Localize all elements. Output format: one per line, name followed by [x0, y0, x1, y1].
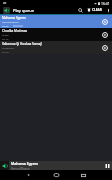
button[interactable]: Play: [98, 28, 112, 41]
button[interactable]: Mahoma Sypres: [0, 161, 112, 170]
staticText: Play queue: [13, 8, 35, 13]
button[interactable]: Search: [76, 6, 85, 14]
button[interactable]: More options: [104, 6, 112, 14]
staticText: 16:41: [101, 1, 110, 6]
button[interactable]: Play: [98, 15, 112, 28]
button[interactable]: Pause: [102, 161, 112, 170]
staticText: 02:15: [2, 37, 9, 40]
button[interactable]: Back: [23, 170, 35, 180]
staticText: Mahoma Sypres: [11, 161, 38, 166]
button[interactable]: Mahoma Sypres: [0, 15, 112, 28]
staticText: CLEAR: [92, 8, 102, 12]
staticText: Chudka Matimaz: [2, 29, 27, 33]
button[interactable]: Recent apps: [77, 170, 89, 180]
staticText: Verrus/Mason: [2, 20, 19, 23]
button[interactable]: Home: [50, 170, 62, 180]
staticText: Verrus/Mason: [11, 167, 30, 170]
button[interactable]: Play: [98, 41, 112, 54]
staticText: Vakamaa (ji Hoakaa Somaj): [2, 42, 43, 46]
button[interactable]: Chudka Matimaz: [0, 28, 112, 41]
staticText: Mahoma Sypres: [2, 16, 26, 20]
button[interactable]: CLEAR: [87, 6, 102, 14]
staticText: Index: [2, 33, 9, 36]
staticText: 03:45: [2, 24, 9, 27]
staticText: 04:10: [2, 50, 9, 53]
button[interactable]: Vakamaa (ji Hoakaa Somaj): [0, 41, 112, 54]
staticText: Sardemsis: [2, 46, 15, 49]
button[interactable]: Play Music: [3, 7, 10, 14]
